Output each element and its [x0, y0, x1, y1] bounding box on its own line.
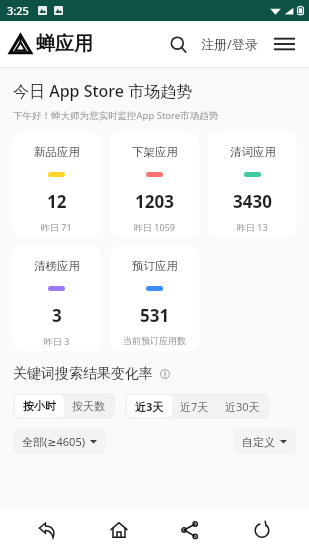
- button[interactable]: Info: [157, 366, 173, 382]
- staticText: 关键词搜索结果变化率: [13, 365, 153, 383]
- button[interactable]: 下架应用: [110, 132, 199, 237]
- staticText: 下架应用: [132, 145, 178, 159]
- button[interactable]: 蝉应用: [9, 32, 93, 56]
- staticText: 预订应用: [132, 259, 178, 273]
- staticText: 蝉应用: [36, 32, 93, 56]
- button[interactable]: 预订应用: [110, 246, 199, 351]
- button[interactable]: Back: [23, 510, 71, 550]
- staticText: 自定义: [242, 435, 275, 449]
- staticText: 近30天: [225, 399, 260, 414]
- button[interactable]: 按天数: [64, 395, 113, 417]
- button[interactable]: 注册/登录: [197, 29, 262, 59]
- staticText: 注册/登录: [201, 35, 258, 53]
- staticText: 1203: [135, 190, 174, 213]
- button[interactable]: Menu: [268, 28, 300, 60]
- button[interactable]: 自定义: [233, 429, 296, 454]
- staticText: 清榜应用: [34, 259, 80, 273]
- button[interactable]: Search: [161, 27, 195, 61]
- staticText: 3430: [233, 190, 272, 213]
- staticText: 3: [52, 304, 62, 327]
- staticText: 按天数: [72, 399, 105, 413]
- staticText: 按小时: [23, 399, 56, 413]
- staticText: 近7天: [180, 399, 209, 414]
- button[interactable]: Home: [95, 510, 143, 550]
- staticText: 531: [140, 304, 170, 327]
- staticText: 全部(≥4605): [22, 434, 85, 449]
- staticText: 昨日 3: [44, 335, 70, 347]
- staticText: 3:25: [7, 3, 29, 18]
- button[interactable]: 近30天: [217, 395, 268, 417]
- button[interactable]: 新品应用: [12, 132, 101, 237]
- staticText: 12: [47, 190, 67, 213]
- staticText: 近3天: [135, 399, 164, 414]
- button[interactable]: 近3天: [127, 395, 172, 417]
- button[interactable]: 全部(≥4605): [13, 429, 106, 454]
- staticText: 清词应用: [230, 145, 276, 159]
- staticText: 今日 App Store 市场趋势: [13, 80, 193, 102]
- staticText: 当前预订应用数: [123, 335, 186, 346]
- button[interactable]: 清词应用: [208, 132, 297, 237]
- staticText: 下午好！蝉大师为您实时监控App Store市场趋势: [13, 109, 219, 122]
- button[interactable]: 按小时: [15, 395, 64, 417]
- button[interactable]: 近7天: [172, 395, 217, 417]
- staticText: 昨日 1059: [134, 221, 175, 233]
- button[interactable]: Refresh: [238, 510, 286, 550]
- button[interactable]: Share: [166, 510, 214, 550]
- staticText: 昨日 71: [41, 221, 72, 233]
- staticText: 昨日 13: [237, 221, 268, 233]
- button[interactable]: 清榜应用: [12, 246, 101, 351]
- staticText: 新品应用: [34, 145, 80, 159]
